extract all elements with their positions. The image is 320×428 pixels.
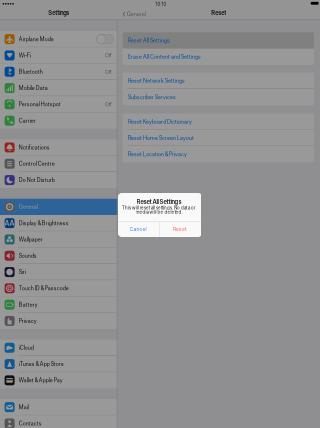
staticText: Reset (173, 226, 187, 232)
staticText: Touch ID & Passcode (19, 285, 69, 292)
staticText: Carrier (19, 117, 36, 124)
staticText: Display & Brightness (19, 220, 69, 226)
staticText: Privacy (19, 318, 37, 324)
button[interactable]: Carrier (0, 112, 117, 129)
button[interactable]: Wallet & Apple Pay (0, 372, 117, 388)
staticText: Reset Location & Privacy (128, 151, 187, 158)
button[interactable]: iTunes & App Store (0, 356, 117, 372)
staticText: Cancel (129, 226, 146, 232)
staticText: General (19, 203, 38, 210)
staticText: Off (105, 52, 112, 59)
button[interactable]: Sounds (0, 248, 117, 264)
staticText: AA (5, 219, 15, 227)
button[interactable]: Reset Network Settings (123, 73, 314, 89)
staticText: Control Centre (19, 160, 55, 167)
button[interactable]: Mail (0, 399, 117, 415)
staticText: iCloud (19, 344, 34, 351)
staticText: Settings (48, 9, 69, 16)
staticText: 10:10 (155, 2, 166, 7)
button[interactable]: Siri (0, 264, 117, 280)
button[interactable]: Wallpaper (0, 231, 117, 248)
staticText: Mobile Data (19, 85, 48, 91)
staticText: Off (105, 69, 112, 75)
staticText: Subscriber Services (128, 94, 176, 100)
button[interactable]: Wi-Fi (0, 47, 117, 64)
staticText: Do Not Disturb (19, 177, 55, 183)
button[interactable]: Touch ID & Passcode (0, 280, 117, 296)
button[interactable]: Mobile Data (0, 80, 117, 96)
button[interactable]: Reset (159, 222, 201, 237)
staticText: Erase All Content and Settings (128, 53, 201, 60)
button[interactable]: Contacts (0, 415, 117, 428)
staticText: Sounds (19, 252, 37, 259)
staticText: Contacts (19, 420, 42, 427)
button[interactable]: AA (0, 215, 117, 231)
button[interactable]: Subscriber Services (123, 89, 314, 105)
button[interactable]: General (120, 9, 148, 19)
button[interactable]: Reset Location & Privacy (123, 146, 314, 162)
button[interactable]: Privacy (0, 313, 117, 329)
staticText: Notifications (19, 144, 50, 151)
staticText: Personal Hotspot (19, 101, 61, 108)
staticText: Mail (19, 404, 29, 410)
button[interactable]: Control Centre (0, 156, 117, 172)
button[interactable]: Personal Hotspot (0, 96, 117, 112)
staticText: Wi-Fi (19, 52, 31, 59)
staticText: Reset Home Screen Layout (128, 135, 194, 141)
button[interactable]: Battery (0, 296, 117, 313)
staticText: Reset (211, 9, 226, 16)
button[interactable]: Cancel (117, 222, 159, 237)
staticText: Off (105, 101, 112, 107)
button[interactable]: iCloud (0, 340, 117, 356)
button[interactable]: Reset All Settings (123, 32, 314, 49)
button[interactable]: Airplane Mode (0, 31, 117, 47)
button[interactable]: Reset Keyboard Dictionary (123, 113, 314, 130)
staticText: Airplane Mode (19, 36, 54, 42)
staticText: media will be deleted. (135, 209, 182, 215)
staticText: Battery (19, 301, 38, 308)
staticText: Reset All Settings (136, 198, 181, 205)
button[interactable]: Erase All Content and Settings (123, 49, 314, 65)
staticText: Reset Network Settings (128, 77, 185, 84)
staticText: This will reset all settings. No data or (122, 205, 196, 210)
staticText: Wallet & Apple Pay (19, 377, 63, 384)
button[interactable]: Bluetooth (0, 64, 117, 80)
staticText: Reset All Settings (128, 37, 170, 44)
button[interactable]: Do Not Disturb (0, 172, 117, 188)
button[interactable]: Reset Home Screen Layout (123, 130, 314, 146)
staticText: Siri (19, 269, 26, 275)
staticText: Bluetooth (19, 68, 43, 75)
button[interactable]: Notifications (0, 139, 117, 156)
staticText: Wallpaper (19, 236, 43, 243)
button[interactable]: General (0, 199, 117, 215)
staticText: General (127, 11, 146, 18)
staticText: iTunes & App Store (19, 361, 64, 367)
staticText: Reset Keyboard Dictionary (128, 118, 192, 125)
